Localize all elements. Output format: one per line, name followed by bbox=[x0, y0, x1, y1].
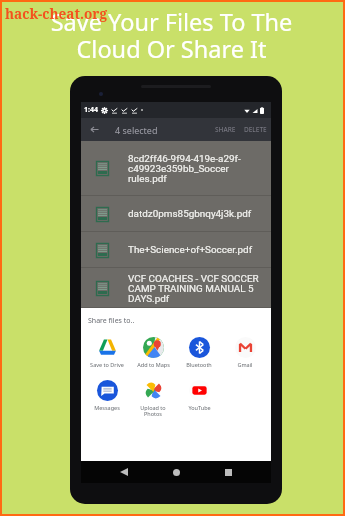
button[interactable]: Bluetooth bbox=[176, 337, 222, 368]
staticText: datdz0pms85gbnqy4j3k.pdf bbox=[128, 208, 252, 220]
staticText: 8cd2ff46-9f94-419e-a29f- c49923e359bb_So… bbox=[128, 153, 241, 184]
button[interactable]: Gmail bbox=[222, 337, 268, 368]
staticText: Save Your Files To The Cloud Or Share It bbox=[1, 6, 342, 65]
button[interactable]: DELETE bbox=[242, 121, 269, 138]
button[interactable]: Upload to Photos bbox=[130, 380, 176, 418]
button[interactable]: VCF COACHES - VCF SOCCER CAMP TRAINING M… bbox=[81, 268, 271, 308]
staticText: DELETE bbox=[244, 125, 267, 134]
staticText: Add to Maps bbox=[137, 361, 170, 368]
staticText: The+Science+of+Soccer.pdf bbox=[128, 244, 253, 256]
staticText: Save to Drive bbox=[90, 361, 124, 368]
button[interactable]: Add to Maps bbox=[130, 337, 176, 368]
button[interactable]: Home bbox=[167, 463, 185, 481]
staticText: 1:44 bbox=[84, 105, 98, 115]
button[interactable]: The+Science+of+Soccer.pdf bbox=[81, 232, 271, 268]
staticText: Upload to Photos bbox=[140, 404, 166, 418]
staticText: Gmail bbox=[237, 361, 253, 368]
staticText: YouTube bbox=[188, 404, 211, 411]
staticText: hack-cheat.org bbox=[5, 4, 107, 23]
button[interactable]: Back bbox=[115, 463, 133, 481]
button[interactable]: YouTube bbox=[176, 380, 222, 411]
button[interactable]: Back bbox=[86, 121, 103, 138]
staticText: VCF COACHES - VCF SOCCER CAMP TRAINING M… bbox=[128, 273, 259, 304]
staticText: Messages bbox=[94, 404, 120, 411]
staticText: SHARE bbox=[215, 125, 236, 134]
staticText: Share files to.. bbox=[88, 316, 135, 326]
button[interactable]: SHARE bbox=[213, 121, 238, 138]
staticText: 4 selected bbox=[115, 124, 158, 136]
button[interactable]: 8cd2ff46-9f94-419e-a29f- c49923e359bb_So… bbox=[81, 141, 271, 196]
button[interactable]: Messages bbox=[84, 380, 130, 411]
button[interactable]: Save to Drive bbox=[84, 337, 130, 368]
button[interactable]: datdz0pms85gbnqy4j3k.pdf bbox=[81, 196, 271, 232]
staticText: Bluetooth bbox=[186, 361, 212, 368]
button[interactable]: Recents bbox=[219, 463, 237, 481]
